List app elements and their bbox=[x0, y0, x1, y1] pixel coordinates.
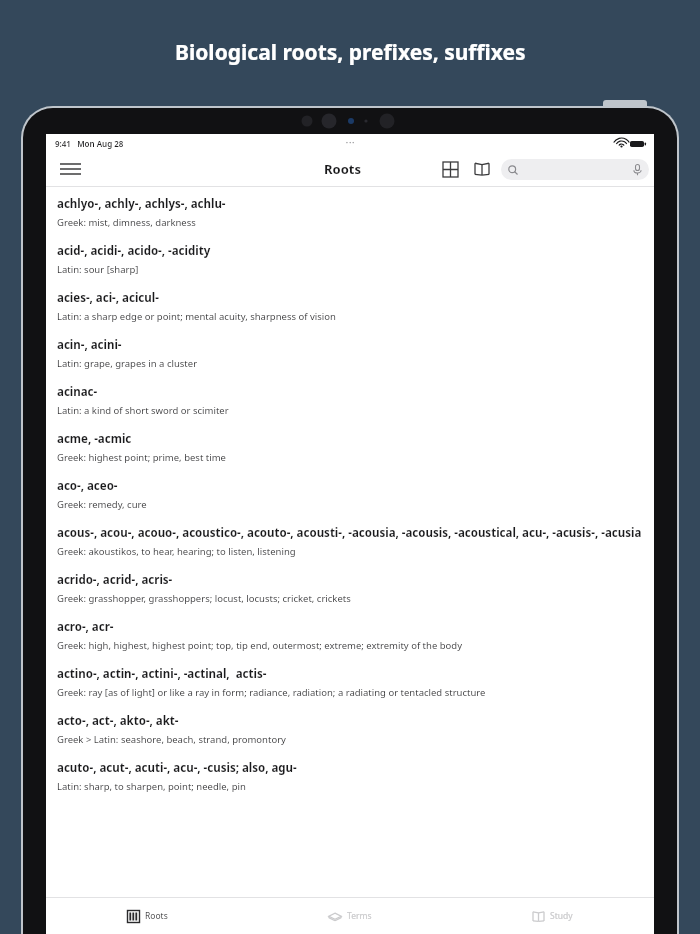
button[interactable]: acro-, acr- bbox=[46, 610, 654, 657]
staticText: Latin: a sharp edge or point; mental acu… bbox=[57, 310, 336, 323]
staticText: acinac- bbox=[57, 384, 98, 400]
staticText: Latin: grape, grapes in a cluster bbox=[57, 357, 198, 370]
button[interactable]: acid-, acidi-, acido-, -acidity bbox=[46, 234, 654, 281]
staticText: acous-, acou-, acouo-, acoustico-, acout… bbox=[57, 525, 642, 541]
button[interactable]: Dictionary bbox=[467, 154, 497, 184]
button[interactable]: Grid view bbox=[435, 154, 465, 184]
button[interactable]: acin-, acini- bbox=[46, 328, 654, 375]
staticText: Study bbox=[550, 910, 573, 922]
button[interactable]: aco-, aceo- bbox=[46, 469, 654, 516]
staticText: Roots bbox=[145, 910, 168, 922]
staticText: 9:41 Mon Aug 28 bbox=[55, 138, 124, 149]
button[interactable]: acies-, aci-, acicul- bbox=[46, 281, 654, 328]
staticText: acro-, acr- bbox=[57, 619, 114, 635]
staticText: acme, -acmic bbox=[57, 431, 132, 447]
staticText: acies-, aci-, acicul- bbox=[57, 290, 159, 306]
button[interactable]: acinac- bbox=[46, 375, 654, 422]
button[interactable]: Menu bbox=[54, 153, 86, 185]
staticText: aco-, aceo- bbox=[57, 478, 118, 494]
staticText: achlyo-, achly-, achlys-, achlu- bbox=[57, 196, 226, 212]
button[interactable]: Terms bbox=[248, 898, 451, 934]
button[interactable]: Roots bbox=[46, 898, 248, 934]
staticText: Greek: akoustikos, to hear, hearing; to … bbox=[57, 545, 296, 558]
button[interactable]: acuto-, acut-, acuti-, acu-, -cusis; als… bbox=[46, 751, 654, 798]
button[interactable]: acme, -acmic bbox=[46, 422, 654, 469]
staticText: • • • bbox=[346, 140, 355, 147]
button[interactable]: actino-, actin-, actini-, -actinal, acti… bbox=[46, 657, 654, 704]
button[interactable]: acto-, act-, akto-, akt- bbox=[46, 704, 654, 751]
staticText: acuto-, acut-, acuti-, acu-, -cusis; als… bbox=[57, 760, 297, 776]
staticText: Greek: ray [as of light] or like a ray i… bbox=[57, 686, 486, 699]
button[interactable]: acrido-, acrid-, acris- bbox=[46, 563, 654, 610]
button[interactable]: acous-, acou-, acouo-, acoustico-, acout… bbox=[46, 516, 654, 563]
staticText: acto-, act-, akto-, akt- bbox=[57, 713, 179, 729]
staticText: Greek > Latin: seashore, beach, strand, … bbox=[57, 733, 286, 746]
staticText: Greek: highest point; prime, best time bbox=[57, 451, 226, 464]
staticText: Terms bbox=[347, 910, 372, 922]
staticText: acrido-, acrid-, acris- bbox=[57, 572, 173, 588]
staticText: Greek: grasshopper, grasshoppers; locust… bbox=[57, 592, 351, 605]
staticText: Roots bbox=[324, 160, 361, 178]
staticText: acin-, acini- bbox=[57, 337, 122, 353]
staticText: acid-, acidi-, acido-, -acidity bbox=[57, 243, 211, 259]
button[interactable]: Search bbox=[501, 159, 649, 180]
button[interactable]: achlyo-, achly-, achlys-, achlu- bbox=[46, 187, 654, 234]
staticText: Latin: a kind of short sword or scimiter bbox=[57, 404, 229, 417]
staticText: Biological roots, prefixes, suffixes bbox=[175, 38, 526, 67]
staticText: Greek: remedy, cure bbox=[57, 498, 147, 511]
staticText: actino-, actin-, actini-, -actinal, acti… bbox=[57, 666, 267, 682]
staticText: Latin: sour [sharp] bbox=[57, 263, 139, 276]
staticText: Greek: mist, dimness, darkness bbox=[57, 216, 196, 229]
button[interactable]: Study bbox=[451, 898, 654, 934]
staticText: Latin: sharp, to sharpen, point; needle,… bbox=[57, 780, 246, 793]
staticText: Greek: high, highest, highest point; top… bbox=[57, 639, 463, 652]
